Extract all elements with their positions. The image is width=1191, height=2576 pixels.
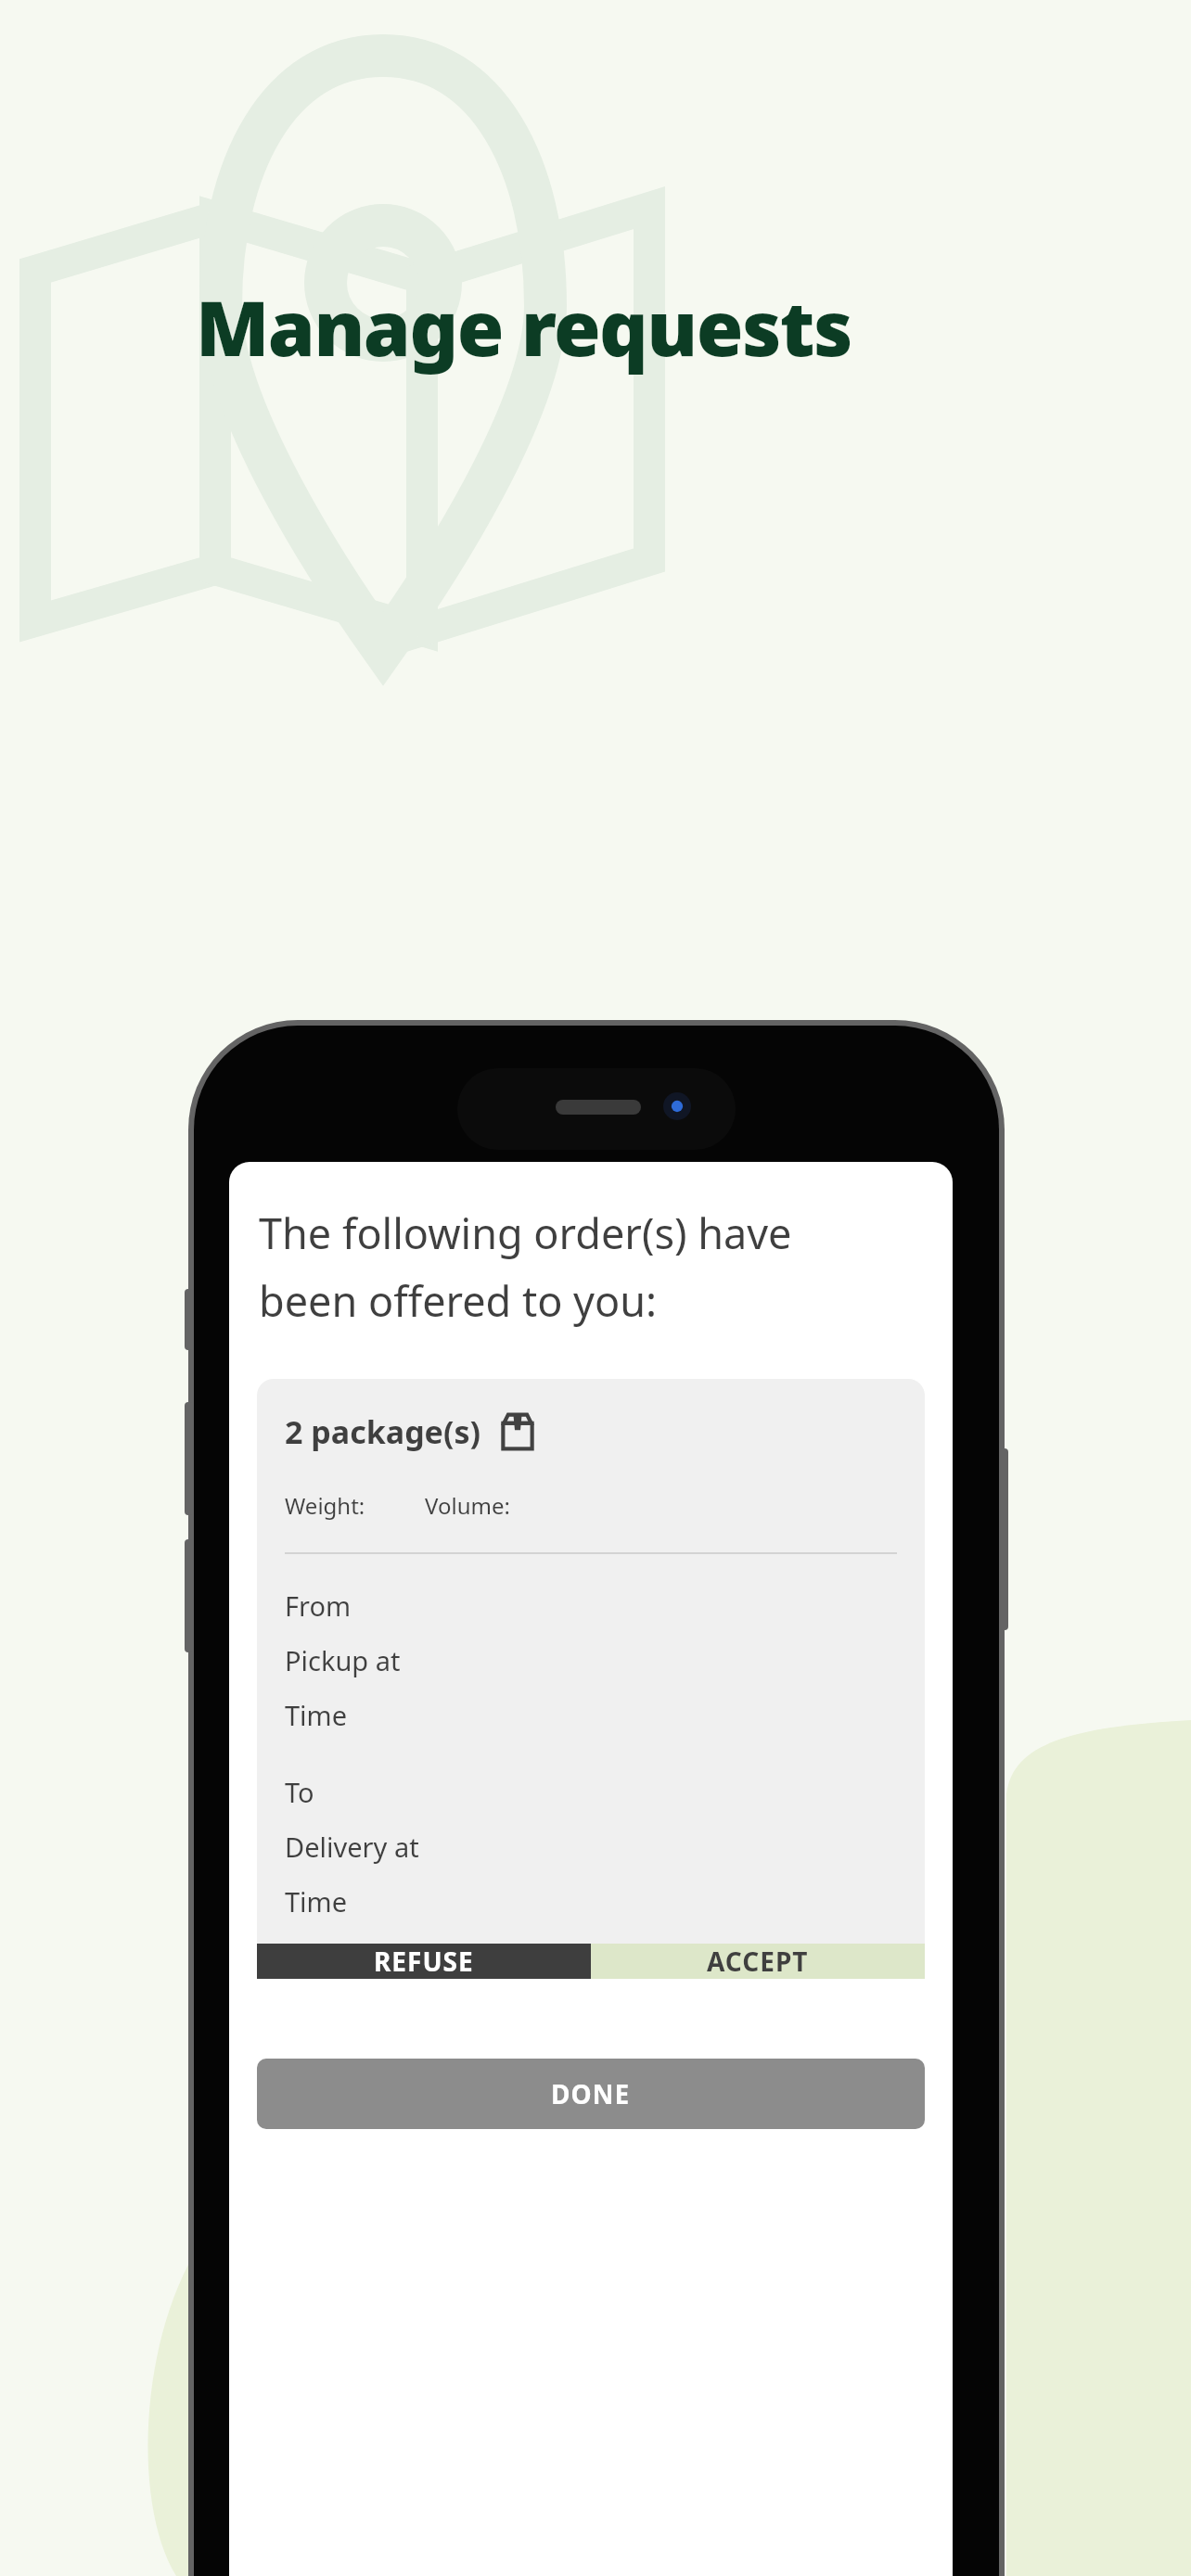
staticText: Delivery at — [285, 1829, 419, 1865]
staticText: ACCEPT — [707, 1944, 809, 1979]
staticText: The following order(s) have been offered… — [259, 1205, 792, 1329]
staticText: Pickup at — [285, 1642, 401, 1678]
button[interactable]: DONE — [257, 2059, 925, 2129]
staticText: Volume: — [425, 1490, 510, 1521]
staticText: Weight: — [285, 1490, 365, 1521]
staticText: REFUSE — [374, 1944, 474, 1979]
staticText: DONE — [551, 2076, 631, 2111]
button[interactable]: ACCEPT — [591, 1944, 925, 1979]
staticText: 2 package(s) — [285, 1410, 481, 1453]
staticText: To — [285, 1774, 314, 1810]
staticText: Time — [285, 1697, 348, 1733]
other: Package — [496, 1410, 539, 1453]
button[interactable]: REFUSE — [257, 1944, 591, 1979]
staticText: From — [285, 1588, 352, 1624]
staticText: Time — [285, 1883, 348, 1919]
staticText: Manage requests — [196, 274, 852, 378]
button[interactable]: 2 package(s) — [257, 1379, 925, 1944]
